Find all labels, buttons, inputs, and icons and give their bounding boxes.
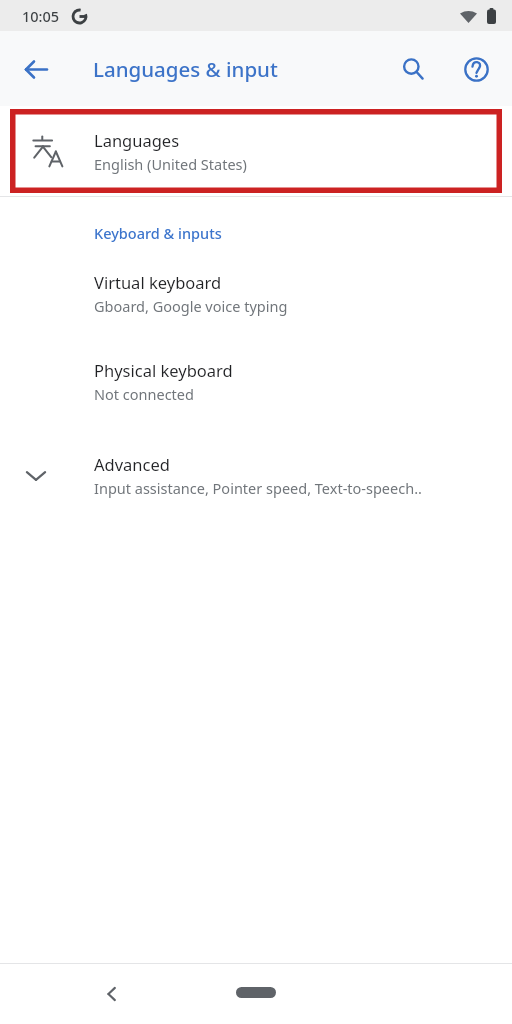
button[interactable]: Virtual keyboard	[0, 271, 512, 316]
button[interactable]: Back	[88, 970, 136, 1018]
staticText: Gboard, Google voice typing	[94, 296, 288, 316]
button[interactable]: Home	[225, 978, 287, 1006]
button[interactable]: Back	[12, 45, 60, 93]
button[interactable]: Search	[389, 45, 437, 93]
staticText: Languages	[94, 129, 180, 151]
staticText: Input assistance, Pointer speed, Text-to…	[94, 478, 422, 498]
staticText: Languages & input	[93, 55, 278, 83]
staticText: Not connected	[94, 384, 194, 404]
staticText: Physical keyboard	[94, 359, 233, 381]
staticText: 10:05	[22, 6, 60, 26]
button[interactable]: Languages	[0, 106, 512, 196]
staticText: Advanced	[94, 453, 170, 475]
staticText: Keyboard & inputs	[94, 223, 222, 243]
button[interactable]: Physical keyboard	[0, 359, 512, 404]
button[interactable]: Advanced	[0, 447, 512, 503]
staticText: Virtual keyboard	[94, 271, 222, 293]
staticText: English (United States)	[94, 154, 247, 174]
button[interactable]: Help	[452, 45, 500, 93]
